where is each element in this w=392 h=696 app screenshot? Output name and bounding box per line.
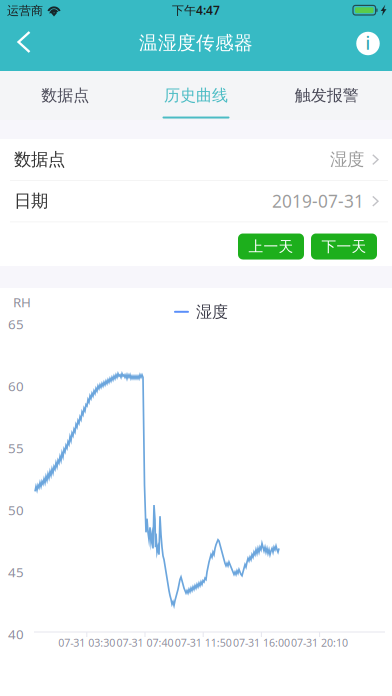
staticText: 运营商 xyxy=(7,3,43,18)
staticText: 上一天 xyxy=(248,237,293,255)
button[interactable]: 下一天 xyxy=(311,233,377,259)
staticText: 40 xyxy=(8,625,24,643)
staticText: 45 xyxy=(8,563,24,581)
staticText: 日期 xyxy=(14,190,48,212)
button[interactable]: 返回 xyxy=(0,20,44,71)
staticText: 07-31 07:40 xyxy=(116,635,173,650)
staticText: 湿度 xyxy=(330,149,364,170)
staticText: 数据点 xyxy=(41,86,89,105)
staticText: 下一天 xyxy=(321,237,366,255)
staticText: 数据点 xyxy=(14,149,65,170)
button[interactable]: 信息 xyxy=(344,20,392,71)
staticText: 60 xyxy=(8,377,24,395)
staticText: 07-31 11:50 xyxy=(175,635,232,650)
button[interactable]: 日期 xyxy=(0,181,392,222)
staticText: 下午4:47 xyxy=(172,2,220,18)
button[interactable]: 数据点 xyxy=(0,139,392,180)
staticText: 温湿度传感器 xyxy=(139,31,253,54)
button[interactable]: 触发报警 xyxy=(261,71,392,120)
staticText: i xyxy=(365,31,370,54)
staticText: 50 xyxy=(8,501,24,519)
staticText: 历史曲线 xyxy=(164,86,228,105)
staticText: 触发报警 xyxy=(295,86,359,105)
staticText: 湿度 xyxy=(196,302,228,322)
staticText: RH xyxy=(13,293,31,311)
button[interactable]: 历史曲线 xyxy=(131,71,261,120)
staticText: 07-31 03:30 xyxy=(58,635,115,650)
button[interactable]: 上一天 xyxy=(238,233,304,259)
staticText: 2019-07-31 xyxy=(272,190,364,213)
staticText: 07-31 16:00 xyxy=(233,635,290,650)
staticText: 55 xyxy=(8,439,24,457)
button[interactable]: 数据点 xyxy=(0,71,131,120)
staticText: 07-31 20:10 xyxy=(291,635,348,650)
staticText: 65 xyxy=(8,315,24,333)
